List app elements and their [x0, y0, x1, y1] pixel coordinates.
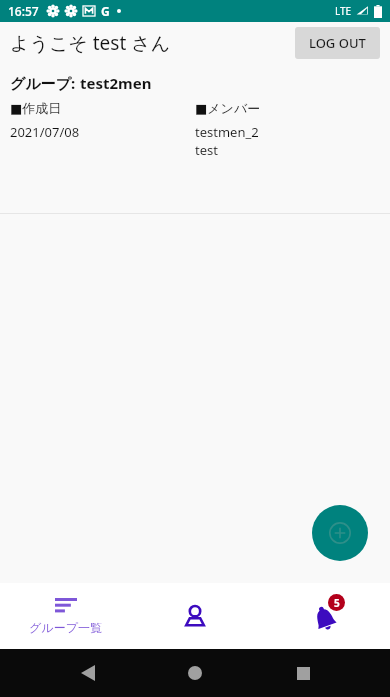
- button[interactable]: Home: [175, 653, 215, 693]
- staticText: LOG OUT: [309, 34, 366, 52]
- staticText: LTE: [335, 4, 352, 18]
- button[interactable]: Notifications, 5 unread: [260, 583, 390, 649]
- staticText: 16:57: [8, 3, 39, 19]
- staticText: 5: [334, 596, 340, 610]
- button[interactable]: Recent apps: [283, 653, 323, 693]
- button[interactable]: Back: [68, 653, 108, 693]
- button[interactable]: LOG OUT: [295, 27, 380, 59]
- button[interactable]: グループ一覧: [0, 583, 130, 649]
- button[interactable]: Add group: [312, 505, 368, 561]
- staticText: ■作成日: [10, 100, 62, 116]
- staticText: グループ一覧: [29, 620, 102, 635]
- staticText: 2021/07/08: [10, 123, 80, 141]
- staticText: ようこそ test さん: [10, 30, 171, 56]
- button[interactable]: Profile: [130, 583, 260, 649]
- staticText: G: [101, 3, 110, 19]
- staticText: test: [195, 141, 218, 159]
- staticText: test2men: [80, 73, 152, 93]
- button[interactable]: グループ:: [0, 64, 390, 213]
- staticText: グループ:: [10, 73, 80, 93]
- staticText: testmen_2: [195, 123, 259, 141]
- staticText: ■メンバー: [195, 100, 261, 116]
